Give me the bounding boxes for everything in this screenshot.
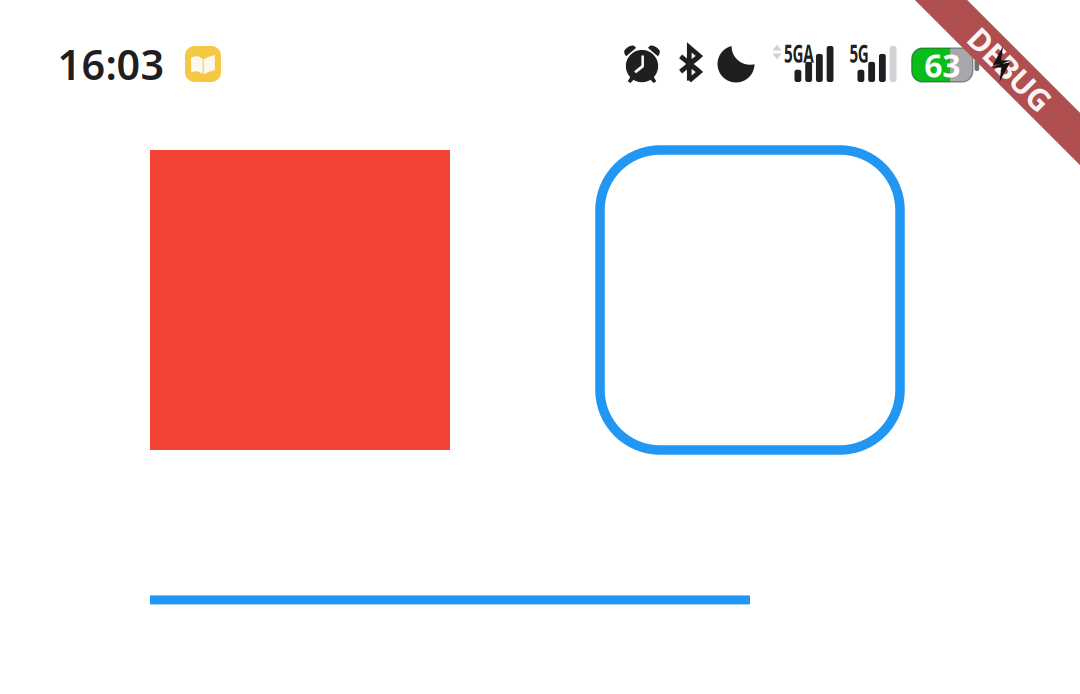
staticText: 63	[924, 44, 960, 86]
staticText: 5G	[843, 36, 875, 70]
staticText: DEBUG	[958, 49, 1062, 89]
staticText: 16:03	[57, 37, 164, 91]
staticText: 5GA	[774, 36, 824, 70]
